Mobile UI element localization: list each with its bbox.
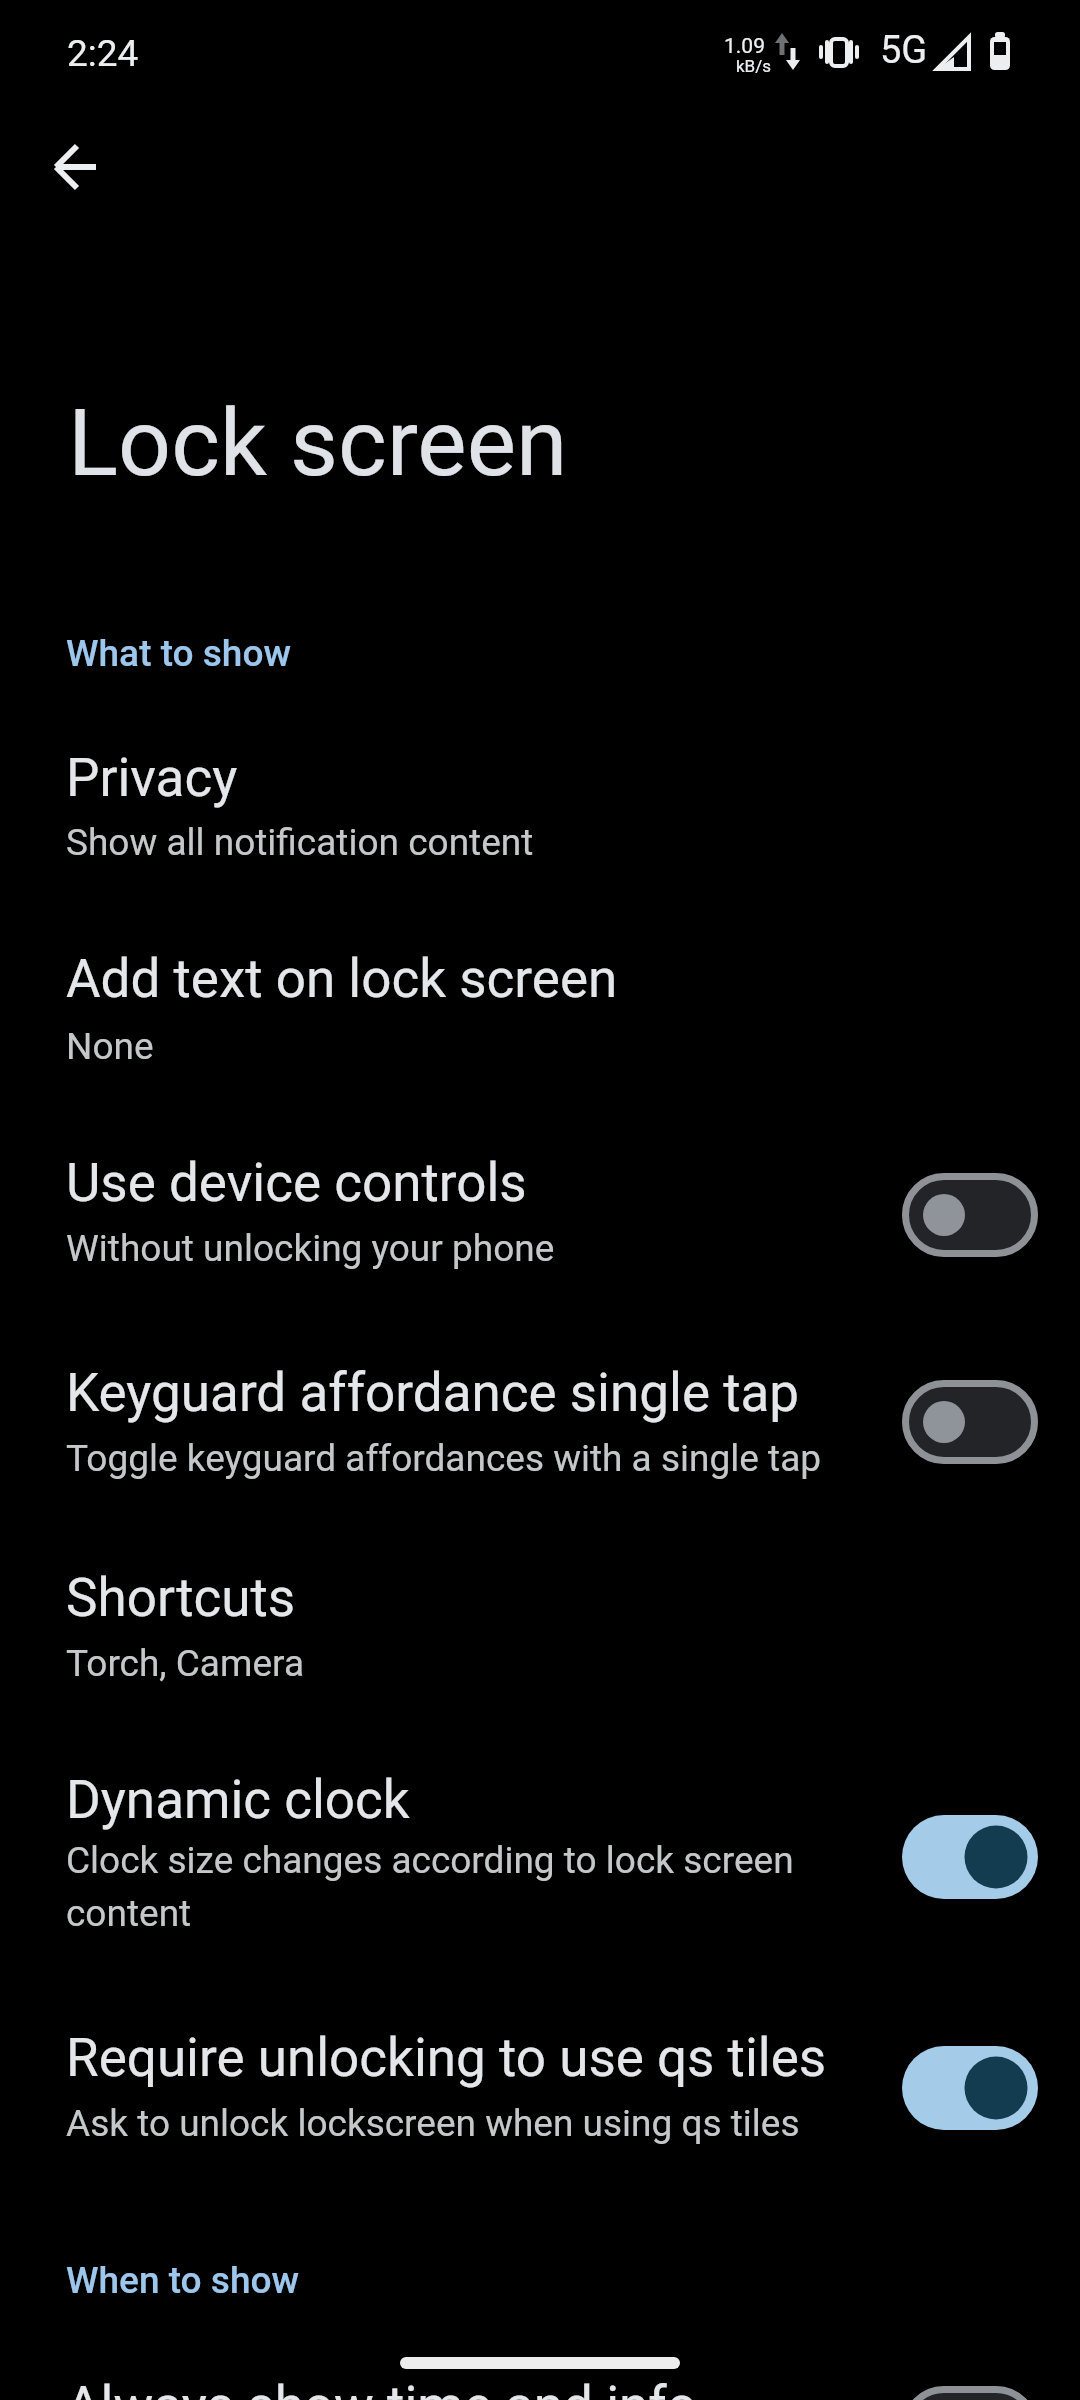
staticText: Privacy xyxy=(66,747,238,809)
staticText: Ask to unlock lockscreen when using qs t… xyxy=(66,2102,800,2145)
staticText: None xyxy=(66,1025,154,1068)
staticText: Clock size changes according to lock scr… xyxy=(66,1839,794,1935)
staticText: Use device controls xyxy=(66,1152,527,1214)
staticText: Lock screen xyxy=(68,389,568,498)
staticText: Dynamic clock xyxy=(66,1769,410,1831)
staticText: Add text on lock screen xyxy=(66,948,618,1010)
staticText: 2:24 xyxy=(67,32,139,75)
staticText: Require unlocking to use qs tiles xyxy=(66,2027,827,2089)
staticText: When to show xyxy=(66,2259,300,2302)
staticText: kB/s xyxy=(736,56,771,76)
staticText: 1.09 xyxy=(724,34,765,59)
staticText: What to show xyxy=(66,632,291,675)
staticText: Shortcuts xyxy=(66,1567,296,1629)
staticText: Torch, Camera xyxy=(66,1642,305,1685)
staticText: Always show time and info xyxy=(66,2375,697,2400)
staticText: Show all notification content xyxy=(66,821,534,864)
staticText: Without unlocking your phone xyxy=(66,1227,555,1270)
staticText: Keyguard affordance single tap xyxy=(66,1362,800,1424)
staticText: Toggle keyguard affordances with a singl… xyxy=(66,1437,822,1480)
staticText: 5G xyxy=(880,28,928,73)
